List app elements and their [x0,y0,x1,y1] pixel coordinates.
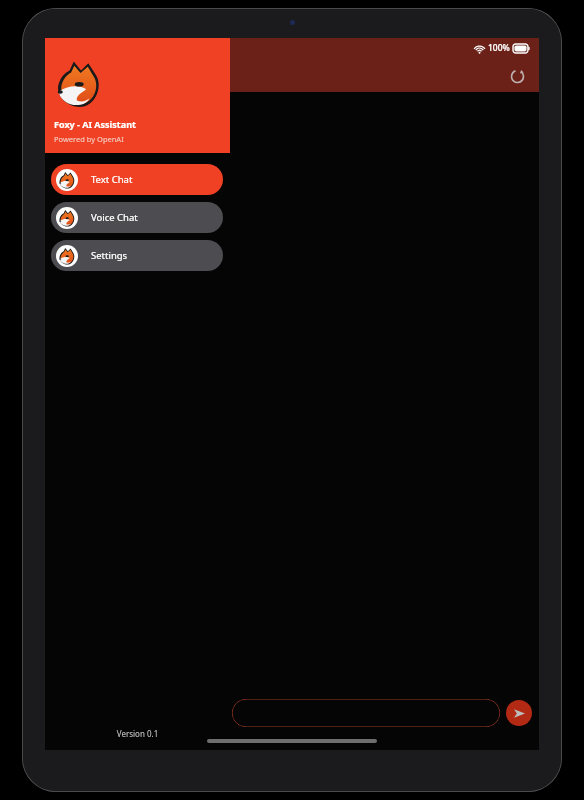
button[interactable]: Refresh [503,62,531,90]
staticText: Version 0.1 [45,728,230,739]
staticText: Voice Chat [91,211,138,224]
staticText: Foxy - AI Assistant [54,118,136,130]
button[interactable]: Settings [51,240,223,271]
button[interactable]: Text Chat [51,164,223,195]
staticText: 100% [488,42,510,54]
staticText: Powered by OpenAI [54,134,124,144]
button[interactable] [232,699,500,727]
staticText: Settings [91,249,128,262]
button[interactable]: Voice Chat [51,202,223,233]
button[interactable]: Send [506,700,532,726]
staticText: Text Chat [91,173,133,186]
